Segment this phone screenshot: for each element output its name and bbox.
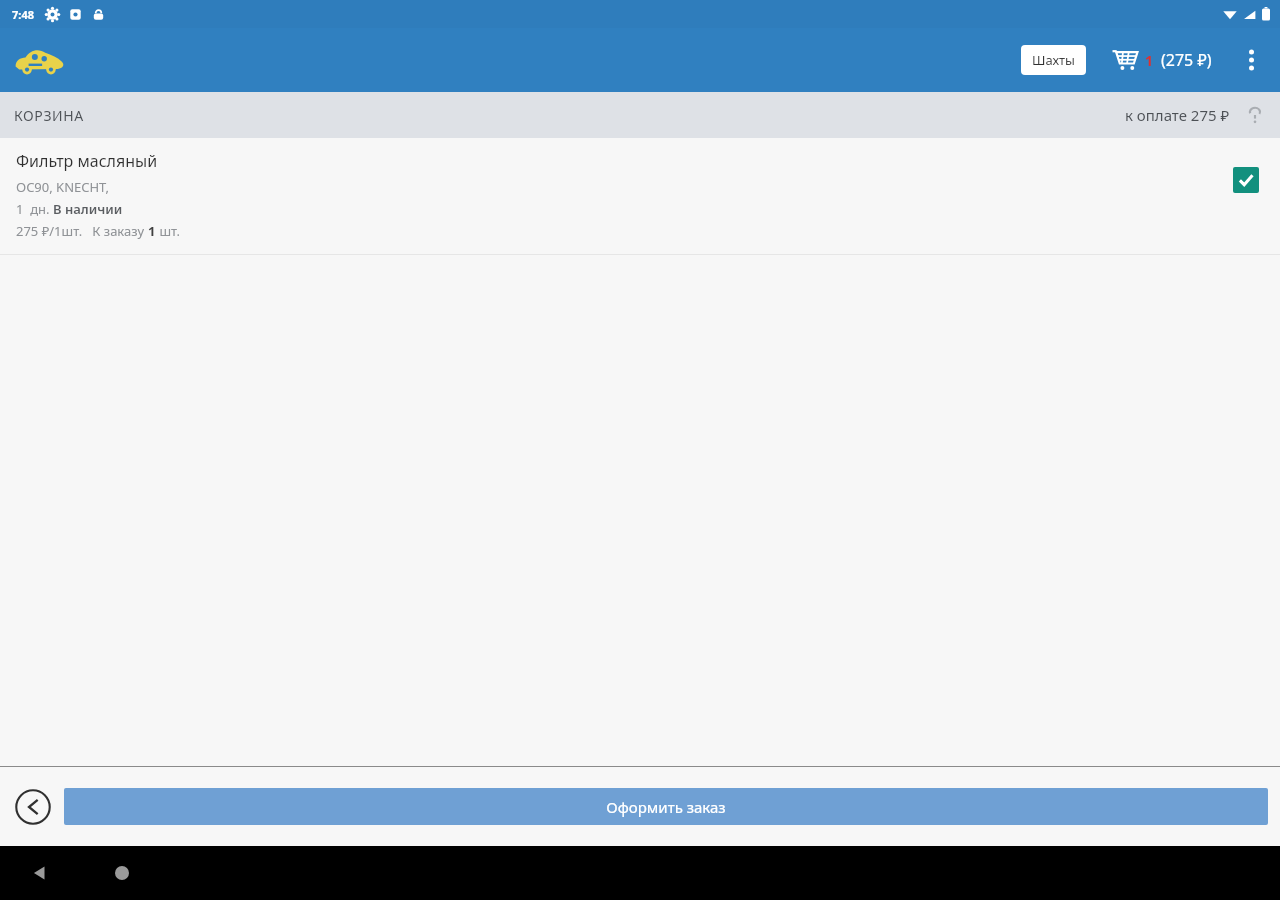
button[interactable]: Back — [18, 851, 62, 895]
staticText: КОРЗИНА — [14, 106, 84, 125]
staticText: 1 — [148, 222, 156, 240]
button[interactable]: Оформить заказ — [64, 788, 1268, 825]
button[interactable]: Help — [1242, 102, 1268, 128]
button[interactable]: Home — [100, 851, 144, 895]
button[interactable]: More options — [1234, 38, 1268, 82]
button[interactable]: 1 — [1108, 43, 1216, 77]
button[interactable]: Фильтр масляный — [0, 138, 1280, 254]
staticText: Фильтр масляный — [16, 150, 158, 172]
staticText: шт. — [156, 222, 181, 240]
staticText: 1 — [1145, 51, 1154, 70]
staticText: 1 дн. — [16, 200, 53, 218]
button[interactable]: Home logo — [10, 40, 68, 80]
button[interactable]: Select item — [1226, 160, 1266, 200]
staticText: к оплате 275 ₽ — [1125, 105, 1230, 125]
staticText: 7:48 — [12, 7, 34, 22]
staticText: В наличии — [53, 200, 123, 218]
staticText: Шахты — [1032, 51, 1075, 69]
staticText: (275 ₽) — [1161, 49, 1212, 71]
button[interactable]: Back — [12, 786, 54, 828]
button[interactable]: Шахты — [1021, 45, 1086, 75]
staticText: Оформить заказ — [606, 797, 726, 817]
staticText: 275 ₽/1шт. К заказу — [16, 222, 148, 240]
staticText: OC90, KNECHT, — [16, 178, 110, 196]
